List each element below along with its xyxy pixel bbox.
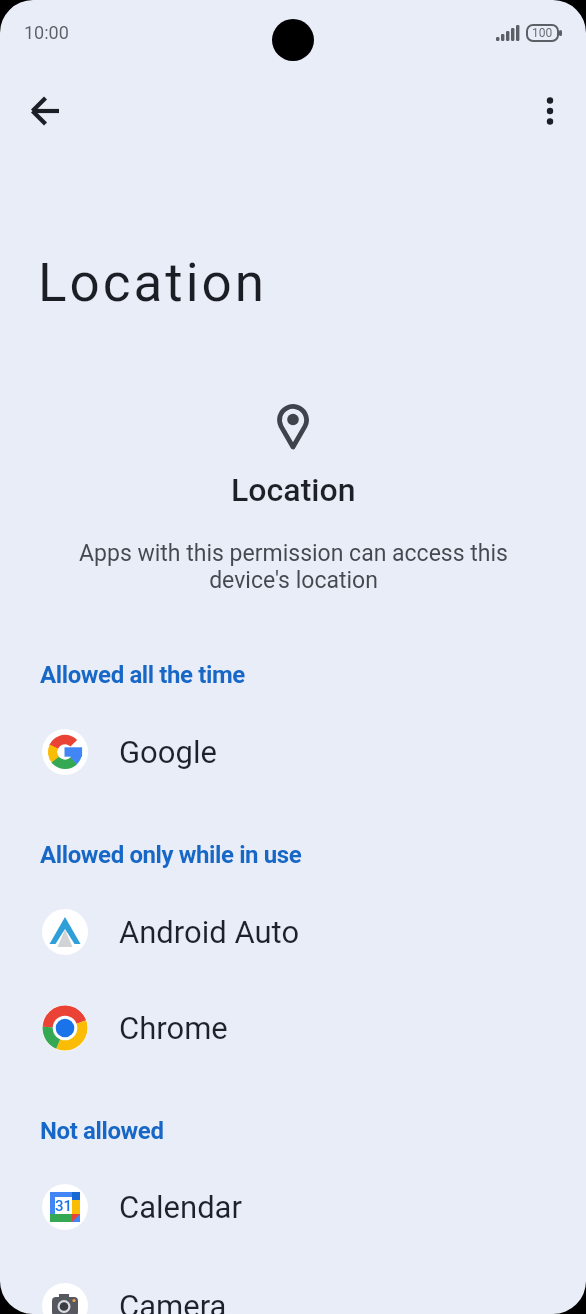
button[interactable]: Google — [0, 705, 586, 799]
staticText: Location — [231, 471, 356, 509]
button[interactable] — [526, 87, 574, 135]
staticText: Not allowed — [40, 1117, 164, 1145]
staticText: Allowed all the time — [40, 661, 245, 689]
button[interactable]: Camera — [0, 1259, 586, 1314]
staticText: Google — [119, 734, 217, 770]
staticText: 10:00 — [24, 22, 69, 43]
staticText: 100 — [532, 26, 553, 40]
staticText: Apps with this permission can access thi… — [79, 540, 508, 594]
staticText: 31 — [55, 1197, 73, 1215]
staticText: Android Auto — [119, 914, 300, 950]
button[interactable]: Android Auto — [0, 885, 586, 979]
staticText: Location — [38, 252, 268, 314]
button[interactable] — [22, 87, 70, 135]
staticText: Allowed only while in use — [40, 841, 302, 869]
staticText: Calendar — [119, 1189, 242, 1225]
staticText: Camera — [119, 1288, 227, 1314]
staticText: Chrome — [119, 1010, 228, 1046]
button[interactable]: 31 — [0, 1160, 586, 1254]
button[interactable]: Chrome — [0, 981, 586, 1075]
